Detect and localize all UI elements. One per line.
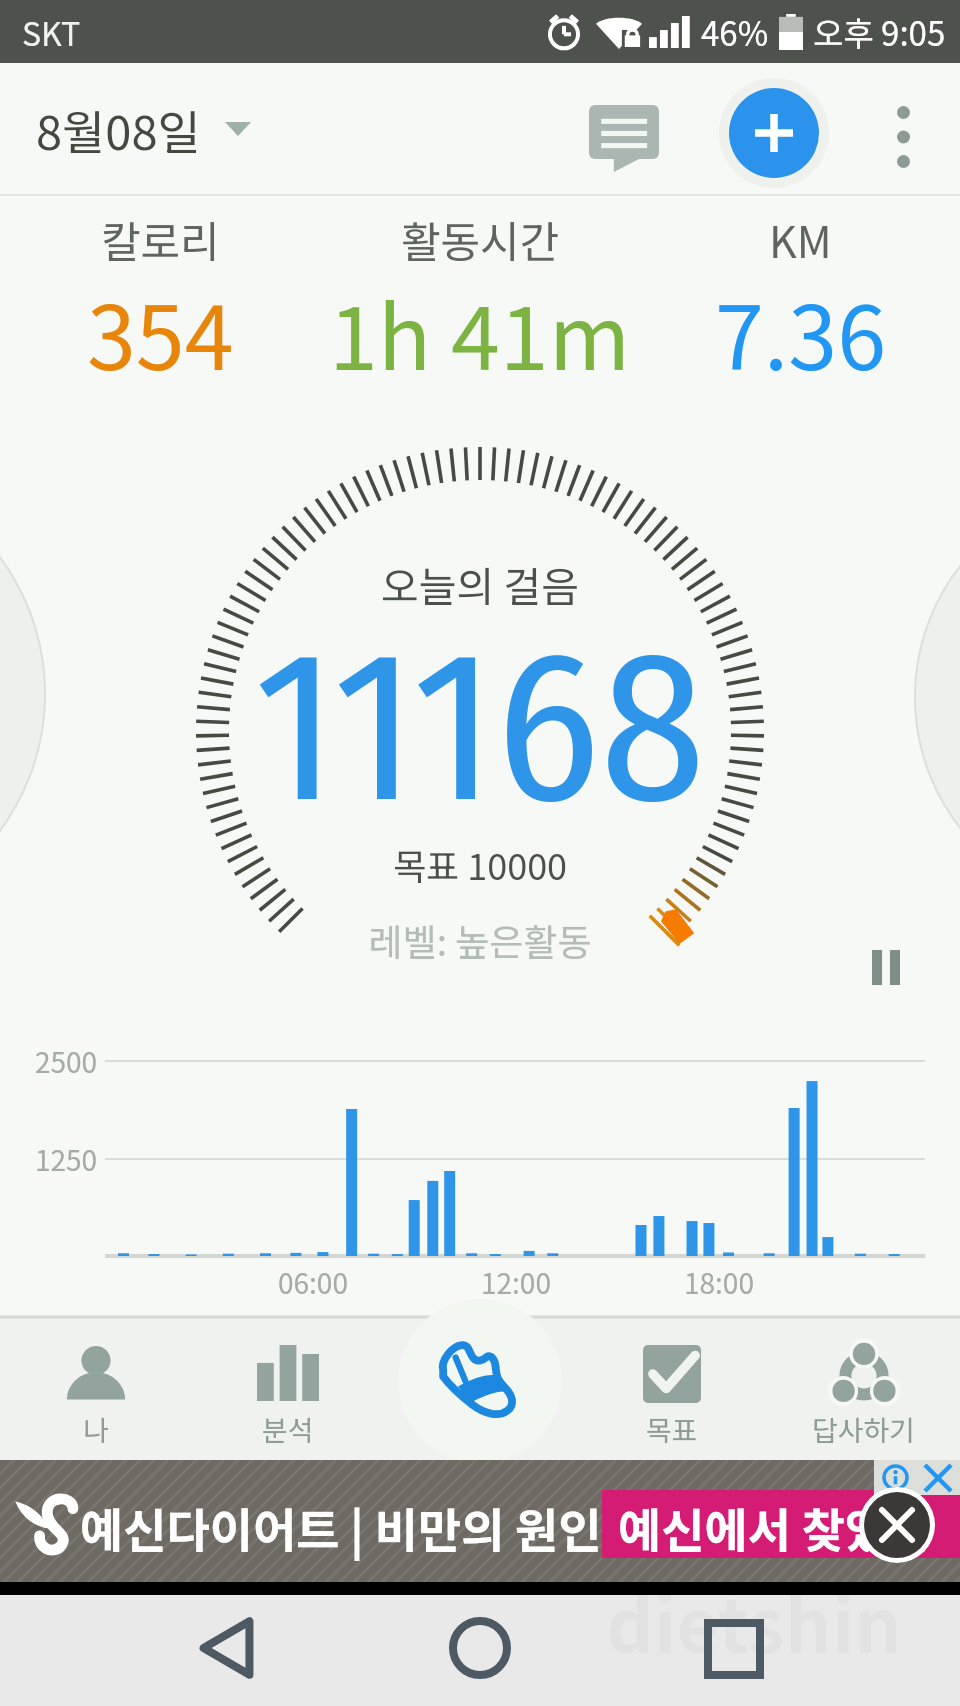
staticText: 46% xyxy=(701,8,769,56)
button[interactable]: 분석 xyxy=(192,1317,384,1460)
staticText: 활동시간 xyxy=(401,208,560,270)
staticText: 7.36 xyxy=(715,268,886,395)
button[interactable]: Add xyxy=(729,88,819,178)
staticText: 분석 xyxy=(262,1409,314,1450)
button[interactable]: 나 xyxy=(0,1317,192,1460)
button[interactable]: 답사하기 xyxy=(768,1317,960,1460)
button[interactable]: Steps xyxy=(398,1299,562,1463)
button[interactable]: Pause xyxy=(836,917,936,1017)
staticText: 1h 41m xyxy=(329,268,631,395)
staticText: dietshin xyxy=(606,1567,902,1674)
staticText: 18:00 xyxy=(684,1262,754,1303)
button[interactable]: Close ad xyxy=(859,1487,935,1563)
staticText: 칼로리 xyxy=(101,208,220,270)
staticText: 오늘의 걸음 xyxy=(0,554,960,613)
staticText: 06:00 xyxy=(278,1262,348,1303)
staticText: 목표 xyxy=(646,1409,698,1450)
staticText: SKT xyxy=(22,9,81,55)
staticText: 2500 xyxy=(35,1041,98,1082)
button[interactable]: KM xyxy=(640,196,960,420)
button[interactable]: Messages xyxy=(570,84,678,192)
staticText: 예신다이어트 | 비만의 원인 xyxy=(80,1493,602,1561)
staticText: 예신에서 찾았다 xyxy=(618,1493,932,1561)
staticText: 1250 xyxy=(35,1139,98,1180)
staticText: 답사하기 xyxy=(812,1409,916,1450)
button[interactable]: Back xyxy=(178,1600,274,1696)
button[interactable]: Home xyxy=(432,1600,528,1696)
button[interactable]: More options xyxy=(863,97,943,177)
button[interactable]: Advertisement xyxy=(0,1460,960,1582)
staticText: 나 xyxy=(83,1409,109,1450)
button[interactable]: Recents xyxy=(686,1601,782,1697)
staticText: 11168 xyxy=(0,602,960,855)
button[interactable]: Ad info xyxy=(874,1460,916,1495)
staticText: KM xyxy=(769,208,832,270)
button[interactable]: 8월08일 xyxy=(36,95,251,163)
button[interactable]: 활동시간 xyxy=(320,196,640,420)
staticText: 8월08일 xyxy=(36,95,201,163)
staticText: 354 xyxy=(87,268,234,395)
staticText: 오후 9:05 xyxy=(813,8,946,56)
staticText: 레벨: 높은활동 xyxy=(0,913,960,967)
button[interactable]: 목표 xyxy=(576,1317,768,1460)
button[interactable]: Close xyxy=(916,1460,960,1495)
button[interactable]: 칼로리 xyxy=(0,196,320,420)
staticText: 12:00 xyxy=(481,1262,551,1303)
staticText: 목표 10000 xyxy=(0,838,960,890)
